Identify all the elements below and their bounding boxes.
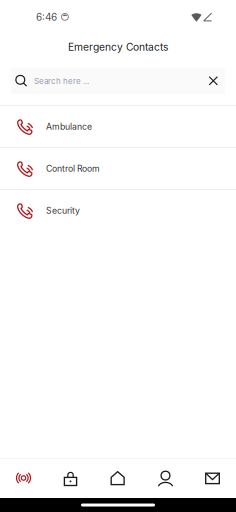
button[interactable]: Profile — [142, 459, 189, 498]
staticText: Security — [46, 205, 80, 216]
staticText: Control Room — [46, 163, 100, 174]
button[interactable]: Security — [0, 189, 236, 231]
staticText: Emergency Contacts — [68, 41, 168, 53]
staticText: Ambulance — [46, 121, 92, 132]
button[interactable]: Control Room — [0, 147, 236, 189]
button[interactable]: Messages — [189, 459, 236, 498]
staticText: Search here ... — [34, 76, 89, 86]
staticText: 6:46 — [36, 11, 57, 23]
button[interactable]: Home — [94, 459, 142, 498]
button[interactable]: Security — [47, 459, 94, 498]
button[interactable]: Emergency — [0, 459, 47, 498]
button[interactable]: Clear search — [208, 68, 225, 94]
button[interactable]: Ambulance — [0, 105, 236, 147]
